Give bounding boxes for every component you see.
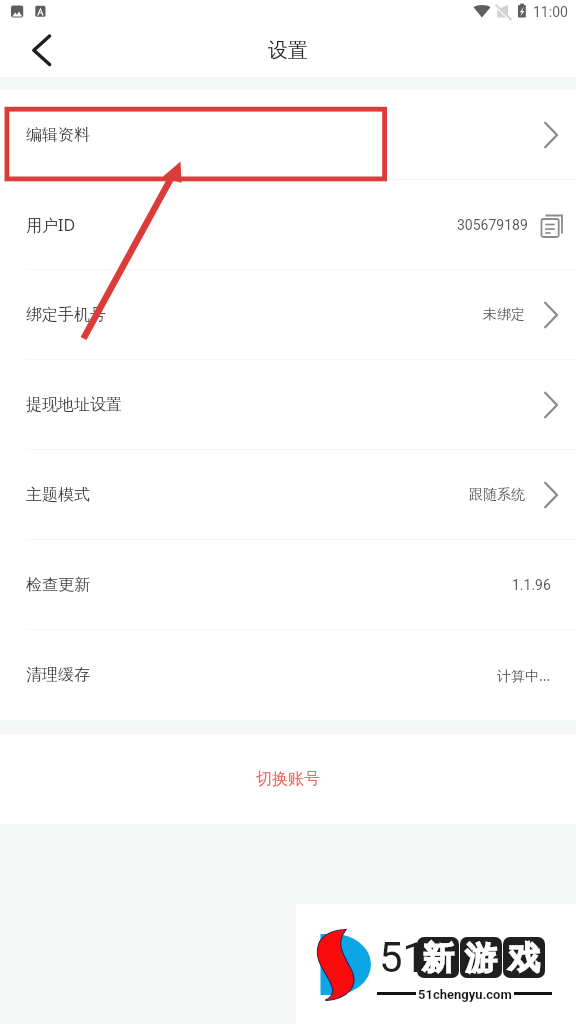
staticText: 用户ID	[26, 214, 76, 236]
staticText: 主题模式	[26, 485, 90, 505]
staticText: 计算中...	[497, 666, 551, 685]
button[interactable]: 提现地址设置	[0, 360, 576, 450]
staticText: 设置	[268, 38, 308, 63]
staticText: 11:00	[533, 4, 568, 20]
staticText: 跟随系统	[469, 486, 525, 504]
button[interactable]: 检查更新	[0, 540, 576, 630]
button[interactable]: 清理缓存	[0, 630, 576, 720]
staticText: 提现地址设置	[26, 395, 122, 415]
staticText: 游	[465, 938, 497, 978]
staticText: 未绑定	[483, 306, 525, 324]
staticText: 51chengyu.com	[418, 987, 512, 1002]
staticText: 编辑资料	[26, 125, 90, 145]
button[interactable]: 绑定手机号	[0, 270, 576, 360]
staticText: 绑定手机号	[26, 305, 106, 325]
staticText: 新	[422, 938, 454, 978]
button[interactable]: 切换账号	[0, 734, 576, 824]
staticText: 切换账号	[256, 769, 320, 789]
staticText: 检查更新	[26, 575, 90, 595]
staticText: 51	[379, 933, 427, 982]
button[interactable]: 用户ID	[0, 180, 576, 270]
button[interactable]: 编辑资料	[0, 90, 576, 180]
staticText: 清理缓存	[26, 665, 90, 685]
staticText: 1.1.96	[512, 577, 551, 593]
button[interactable]: Copy	[540, 212, 565, 238]
staticText: 戏	[508, 938, 540, 978]
button[interactable]: Back	[0, 24, 56, 77]
staticText: 305679189	[457, 217, 528, 233]
button[interactable]: 主题模式	[0, 450, 576, 540]
